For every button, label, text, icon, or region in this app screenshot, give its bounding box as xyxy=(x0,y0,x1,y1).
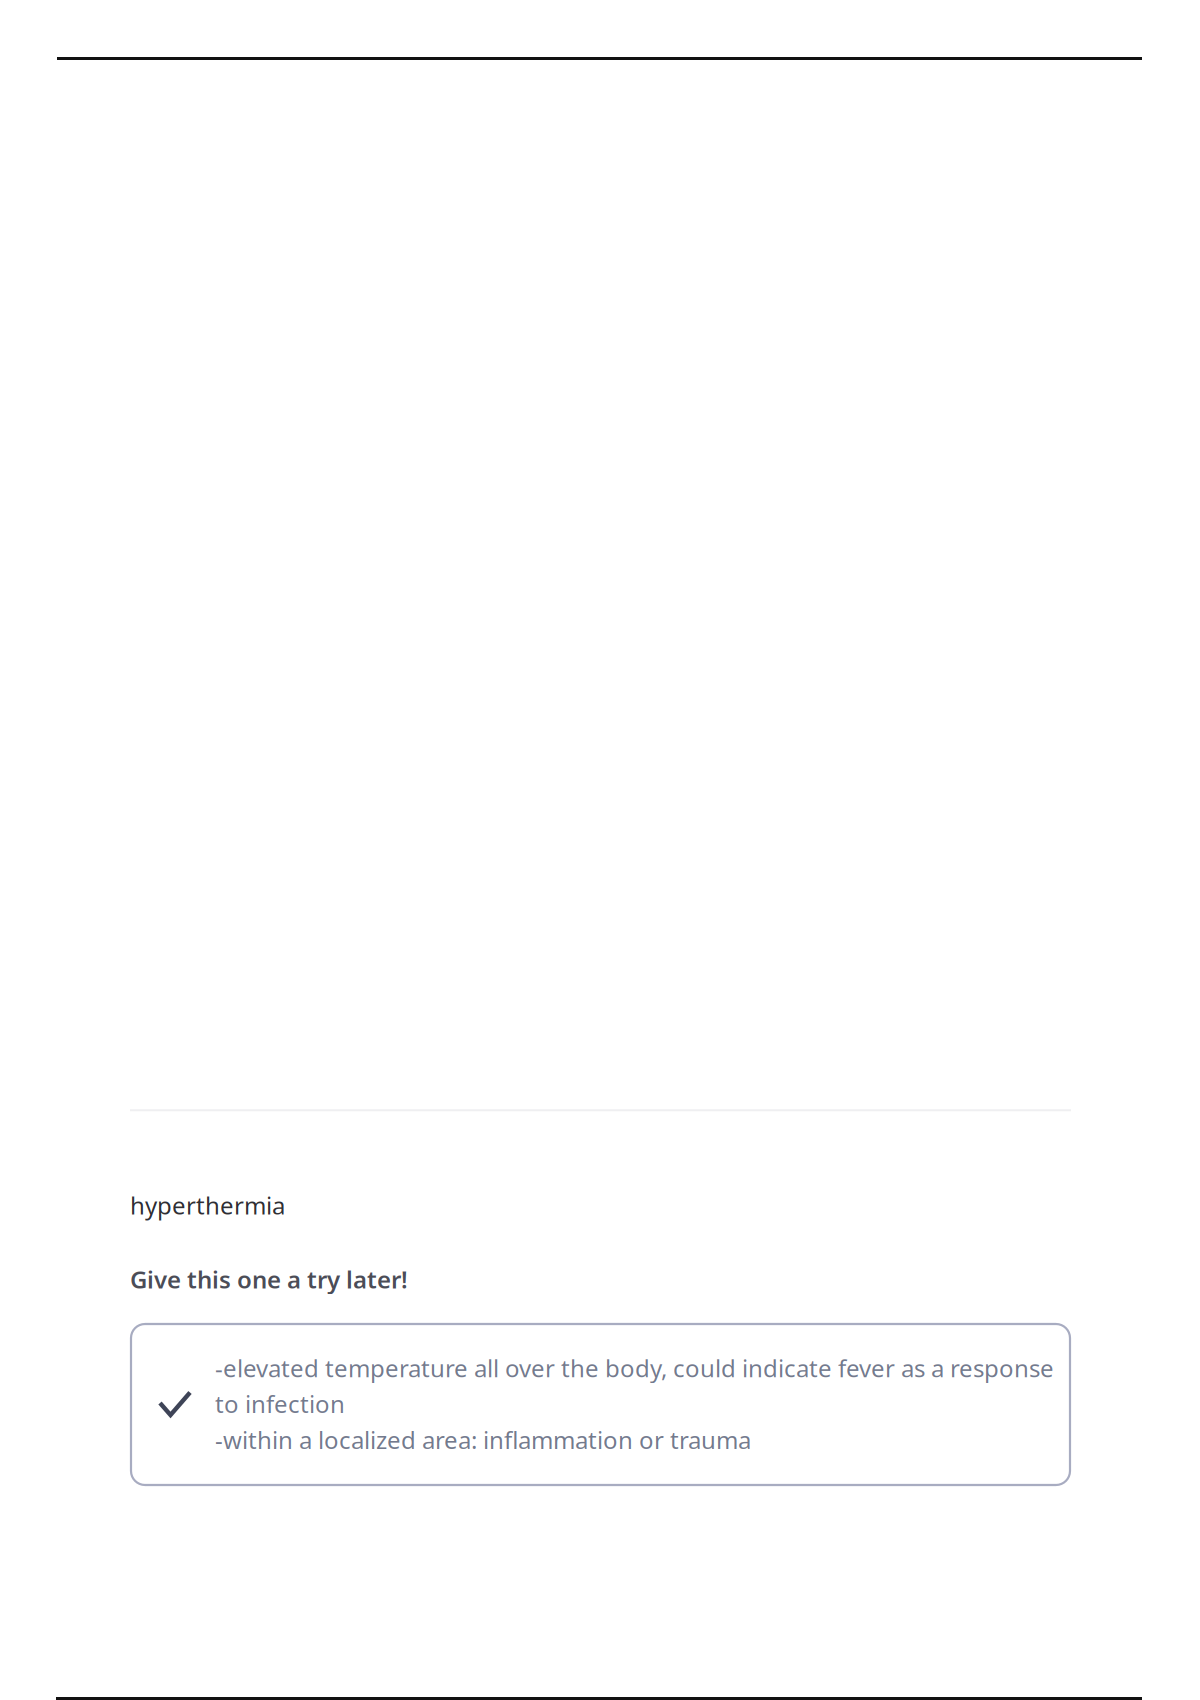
staticText: -elevated temperature all over the body,… xyxy=(215,1352,1054,1456)
button[interactable]: -elevated temperature all over the body,… xyxy=(131,1324,1070,1485)
staticText: hyperthermia xyxy=(130,1189,285,1221)
staticText: Give this one a try later! xyxy=(130,1263,408,1295)
